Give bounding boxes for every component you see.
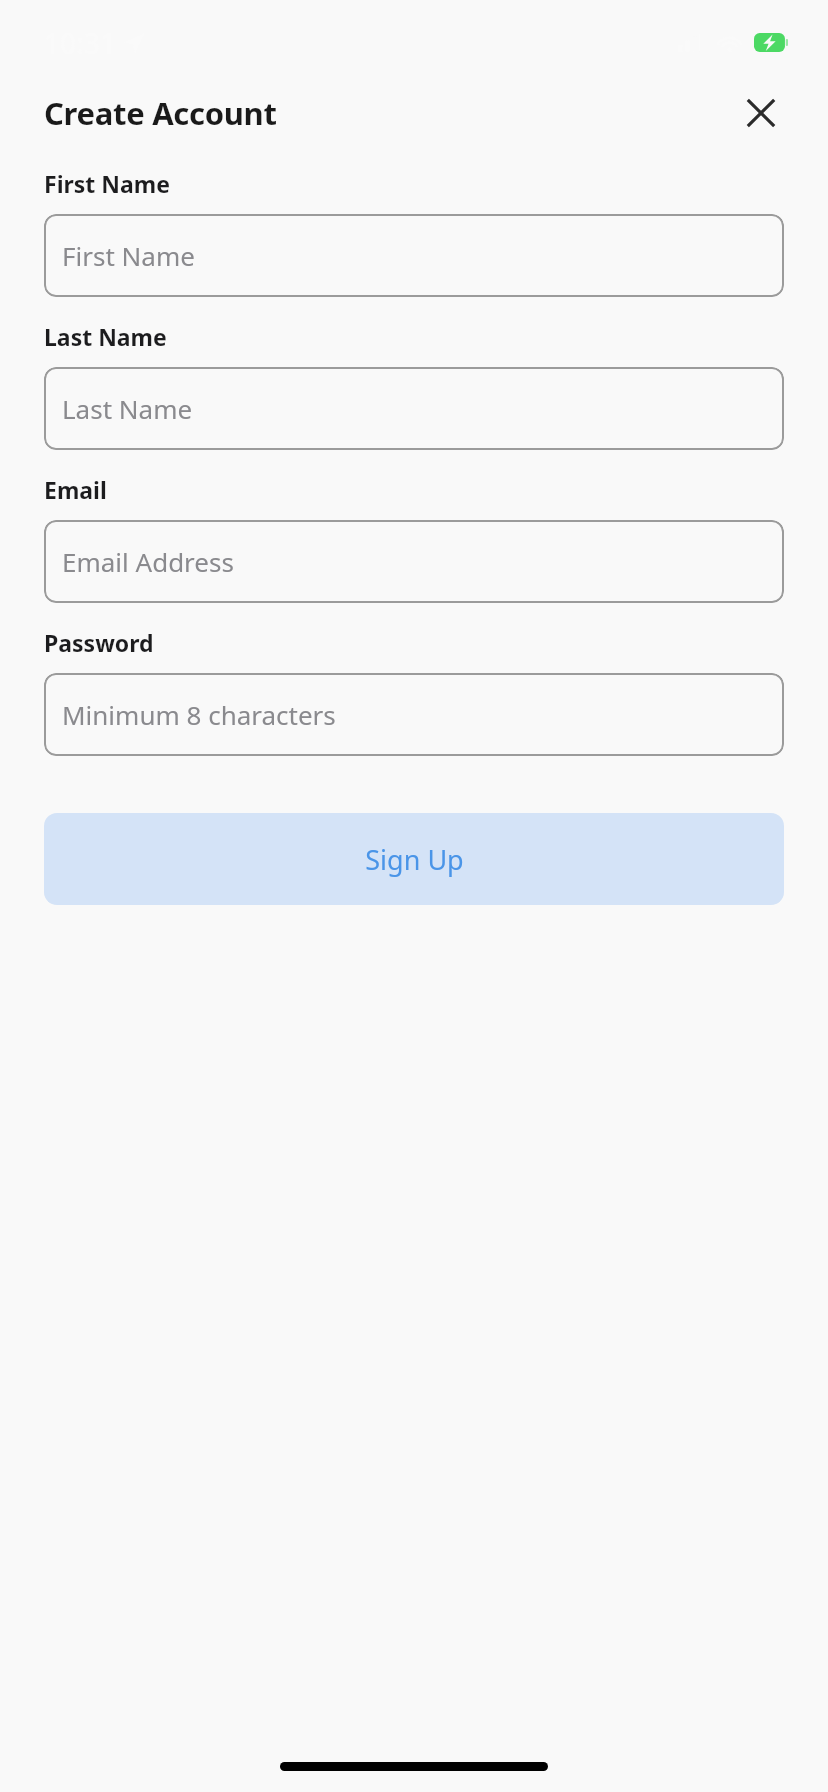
staticText: Sign Up (365, 841, 464, 878)
staticText: Minimum 8 characters (62, 697, 336, 732)
button[interactable]: Close (734, 86, 788, 140)
staticText: Password (44, 627, 154, 658)
staticText: Email (44, 474, 107, 505)
staticText: Email Address (62, 544, 234, 579)
button[interactable]: Last Name (44, 367, 784, 450)
button[interactable]: Sign Up (44, 813, 784, 905)
button[interactable]: Minimum 8 characters (44, 673, 784, 756)
staticText: Last Name (62, 391, 193, 426)
staticText: Last Name (44, 321, 167, 352)
staticText: First Name (62, 238, 195, 273)
staticText: Create Account (44, 92, 277, 134)
button[interactable]: First Name (44, 214, 784, 297)
button[interactable]: Email Address (44, 520, 784, 603)
staticText: First Name (44, 168, 170, 199)
